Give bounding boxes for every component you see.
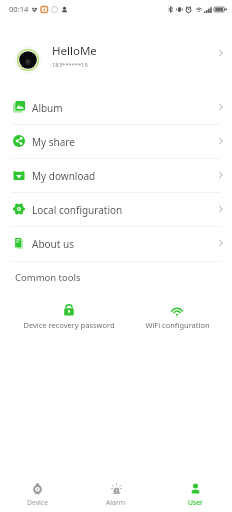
button[interactable]: Local configuration bbox=[0, 192, 232, 226]
staticText: My download bbox=[32, 169, 96, 183]
button[interactable]: User bbox=[157, 475, 232, 511]
button[interactable]: My share bbox=[0, 124, 232, 158]
staticText: Device bbox=[27, 498, 48, 507]
button[interactable]: Device bbox=[0, 475, 75, 511]
staticText: 00:14 bbox=[9, 4, 29, 14]
button[interactable]: Album bbox=[0, 90, 232, 124]
staticText: Device recovery password bbox=[23, 320, 115, 330]
staticText: HelloMe bbox=[52, 43, 97, 59]
staticText: My share bbox=[32, 135, 75, 149]
button[interactable]: HelloMe bbox=[0, 37, 232, 82]
button[interactable]: WiFi configuration bbox=[129, 303, 225, 335]
button[interactable]: Alarm bbox=[78, 475, 154, 511]
staticText: Common tools bbox=[15, 271, 81, 284]
staticText: Local configuration bbox=[32, 203, 123, 217]
staticText: Album bbox=[32, 101, 63, 115]
button[interactable]: Device recovery password bbox=[21, 303, 117, 335]
staticText: Alarm bbox=[106, 498, 126, 507]
staticText: 183******15 bbox=[52, 61, 88, 69]
staticText: User bbox=[188, 498, 203, 507]
staticText: WiFi configuration bbox=[145, 320, 210, 330]
button[interactable]: My download bbox=[0, 158, 232, 192]
button[interactable]: About us bbox=[0, 226, 232, 260]
staticText: About us bbox=[32, 237, 74, 251]
